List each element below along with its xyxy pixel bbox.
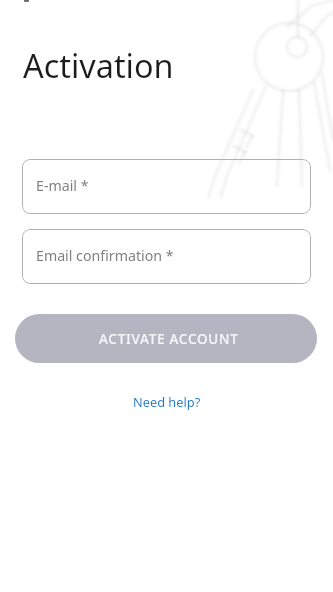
staticText: E-mail * <box>36 176 89 195</box>
button[interactable]: Email confirmation * <box>22 229 311 284</box>
staticText: Activation <box>23 43 174 87</box>
staticText: Email confirmation * <box>36 246 174 265</box>
staticText: Need help? <box>133 393 201 410</box>
other: Decorative keys illustration <box>0 0 333 592</box>
button[interactable]: ACTIVATE ACCOUNT <box>15 314 317 363</box>
button[interactable]: E-mail * <box>22 159 311 214</box>
staticText: ACTIVATE ACCOUNT <box>99 330 239 348</box>
button[interactable]: Need help? <box>123 388 211 415</box>
